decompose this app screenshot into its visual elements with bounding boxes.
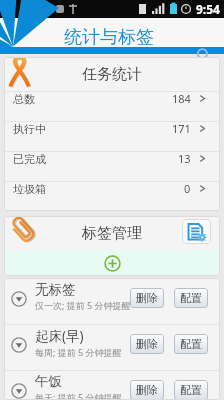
button[interactable]: Search — [192, 41, 214, 63]
staticText: 删除 — [136, 383, 158, 397]
button[interactable]: 午饭 — [4, 370, 220, 400]
staticText: 午饭 — [35, 373, 62, 390]
button[interactable]: Add tag — [4, 250, 220, 276]
button[interactable]: 已完成 — [4, 151, 220, 181]
staticText: 垃圾箱 — [13, 182, 46, 196]
staticText: 每周; 提前 5 分钟提醒 — [35, 346, 122, 358]
button[interactable]: 删除 — [130, 380, 164, 400]
staticText: 仅一次; 提前 5 分钟提醒 — [35, 299, 131, 311]
staticText: 已完成 — [13, 152, 46, 166]
staticText: 标签管理 — [82, 224, 142, 243]
staticText: 起床(早) — [35, 327, 84, 345]
staticText: 删除 — [136, 337, 158, 351]
staticText: 13 — [178, 151, 191, 166]
button[interactable]: 删除 — [130, 288, 164, 308]
button[interactable]: 执行中 — [4, 121, 220, 151]
button[interactable]: 总数 — [4, 91, 220, 121]
staticText: 配置 — [180, 291, 202, 305]
staticText: 184 — [172, 91, 191, 106]
staticText: 配置 — [180, 337, 202, 351]
staticText: 0 — [184, 181, 191, 196]
staticText: 执行中 — [13, 122, 46, 136]
staticText: 配置 — [180, 383, 202, 397]
staticText: 9:54 — [196, 1, 220, 17]
staticText: 总数 — [13, 92, 35, 106]
button[interactable]: 垃圾箱 — [4, 181, 220, 211]
staticText: 171 — [172, 121, 191, 136]
staticText: 删除 — [136, 291, 158, 305]
button[interactable]: 起床(早) — [4, 324, 220, 370]
staticText: 统计与标签 — [64, 26, 154, 49]
button[interactable]: 配置 — [174, 380, 208, 400]
button[interactable]: 配置 — [174, 288, 208, 308]
staticText: 无标签 — [35, 281, 76, 298]
staticText: 任务统计 — [82, 65, 142, 84]
button[interactable]: 无标签 — [4, 278, 220, 324]
button[interactable]: 配置 — [174, 334, 208, 354]
staticText: 每天; 提前 5 分钟提醒 — [35, 391, 122, 400]
button[interactable]: 删除 — [130, 334, 164, 354]
button[interactable]: Tag settings — [182, 219, 211, 244]
